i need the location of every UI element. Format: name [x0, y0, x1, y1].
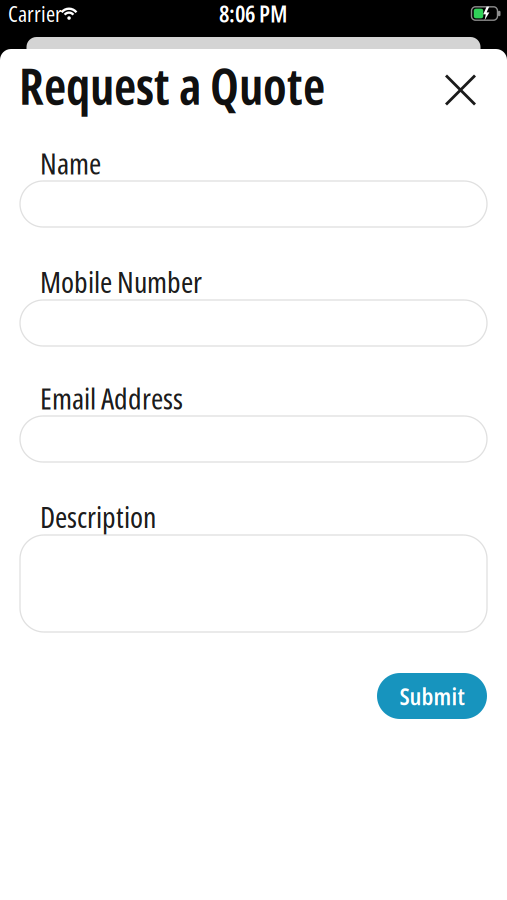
button[interactable] — [438, 68, 482, 112]
button[interactable]: Submit — [377, 673, 487, 719]
staticText: Request a Quote — [19, 52, 325, 119]
staticText: Email Address — [40, 378, 183, 418]
button[interactable] — [20, 181, 487, 227]
staticText: Submit — [399, 680, 464, 712]
button[interactable] — [20, 535, 487, 632]
staticText: Mobile Number — [40, 261, 202, 301]
staticText: 8:06 PM — [219, 0, 288, 29]
staticText: Name — [40, 143, 101, 183]
button[interactable] — [20, 300, 487, 346]
staticText: Description — [40, 496, 156, 536]
staticText: Carrier — [8, 0, 62, 28]
button[interactable] — [20, 416, 487, 462]
